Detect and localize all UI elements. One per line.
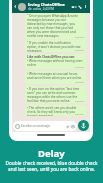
- button[interactable]: Call: [77, 4, 83, 10]
- button[interactable]: • The others won't see you double check.…: [27, 106, 84, 116]
- button[interactable]: Escribe un mensaje: [15, 121, 75, 131]
- staticText: Delay: [38, 147, 65, 160]
- staticText: " If you enable the notification option,…: [27, 41, 81, 52]
- button[interactable]: Record voice message: [78, 120, 89, 131]
- staticText: • Write messages without having seen onl…: [27, 59, 83, 67]
- staticText: • Write messages at unusual hours and ca…: [27, 72, 82, 80]
- staticText: 2:43 PM: [75, 100, 84, 103]
- staticText: " Once you open WhatsApp & write message…: [27, 14, 78, 38]
- button[interactable]: Like with ChatsOffline you can:: [27, 55, 84, 69]
- button[interactable]: " If you enable the notification option,…: [27, 41, 84, 52]
- staticText: 2:43 PM: [75, 36, 84, 39]
- staticText: Double check received, blue double check…: [0, 160, 103, 172]
- other: Camera: [71, 124, 75, 129]
- button[interactable]: • If you turn on the option "last time s…: [27, 87, 84, 103]
- staticText: Escribe un mensaje: [21, 124, 65, 128]
- button[interactable]: • Write messages at unusual hours and ca…: [27, 72, 84, 84]
- staticText: 2:43 PM: [75, 66, 84, 69]
- button[interactable]: More options: [83, 4, 88, 9]
- staticText: 2:43 PM: [75, 49, 84, 52]
- other: Attach file: [65, 124, 70, 129]
- button[interactable]: " Once you open WhatsApp & write message…: [27, 14, 84, 39]
- button[interactable]: Video call: [71, 4, 77, 10]
- staticText: Irving ChatsOffline: [28, 2, 65, 7]
- staticText: • If you turn on the option "last time s…: [27, 87, 80, 103]
- staticText: • The others won't see you double check.…: [27, 106, 77, 116]
- staticText: 2:43 PM: [75, 113, 84, 116]
- staticText: Like with ChatsOffline you can:: [27, 55, 75, 59]
- staticText: 2:43 PM: [75, 81, 84, 84]
- button[interactable]: Back: [13, 4, 18, 9]
- staticText: dir. activa, 2:43 PM: [28, 7, 55, 11]
